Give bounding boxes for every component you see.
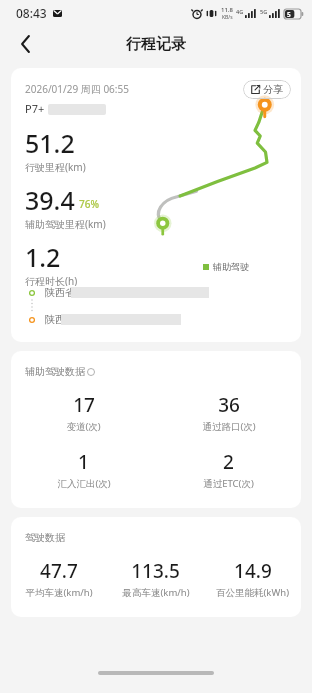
staticText: KB/s (222, 14, 233, 21)
staticText: 2 (223, 449, 234, 475)
staticText: 76% (79, 197, 99, 211)
staticText: 行程时长(h) (25, 274, 78, 286)
staticText: 平均车速(km/h) (25, 586, 93, 599)
staticText: 08:43 (16, 5, 47, 21)
staticText: 39.4 (25, 183, 75, 217)
staticText: 5 (287, 10, 291, 19)
staticText: 11.8 (221, 6, 233, 14)
staticText: 分享 (263, 83, 283, 96)
staticText: 驾驶数据 (25, 531, 65, 544)
staticText: 1.2 (25, 240, 61, 274)
staticText: 17 (73, 392, 95, 418)
staticText: 2026/01/29 周四 06:55 (25, 82, 129, 96)
staticText: 辅助驾驶里程(km) (25, 217, 106, 231)
staticText: 4G (236, 8, 244, 15)
staticText: 51.2 (25, 126, 75, 160)
staticText: 陕西省 (45, 286, 75, 299)
staticText: 行驶里程(km) (25, 160, 86, 174)
staticText: P7+ (25, 101, 48, 116)
staticText: 36 (218, 392, 240, 418)
staticText: 最高车速(km/h) (122, 586, 190, 599)
staticText: 陕西 (45, 313, 65, 326)
staticText: 辅助驾驶数据 (25, 365, 85, 378)
button[interactable]: 返回 (8, 27, 42, 61)
staticText: 百公里能耗(kWh) (216, 586, 289, 599)
staticText: 辅助驾驶 (213, 261, 249, 272)
staticText: 行程记录 (126, 35, 186, 54)
button[interactable]: 说明 (87, 368, 95, 376)
button[interactable]: 分享 (243, 80, 291, 99)
staticText: 变道(次) (66, 420, 101, 433)
staticText: 1 (78, 449, 89, 475)
staticText: 汇入汇出(次) (57, 477, 111, 490)
staticText: 113.5 (131, 558, 180, 584)
staticText: 通过路口(次) (202, 420, 256, 433)
staticText: 5G (260, 8, 268, 15)
staticText: 通过ETC(次) (203, 477, 254, 490)
staticText: 14.9 (234, 558, 272, 584)
staticText: 47.7 (40, 558, 78, 584)
